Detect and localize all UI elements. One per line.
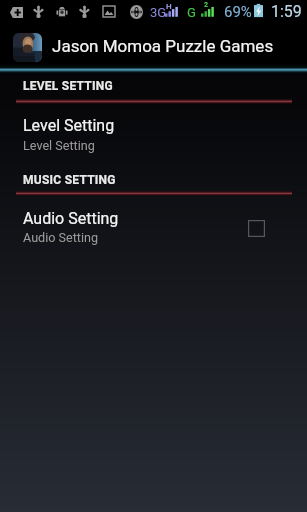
staticText: Jason Momoa Puzzle Games [52, 36, 274, 56]
staticText: MUSIC SETTING [23, 173, 116, 187]
staticText: Audio Setting [23, 209, 119, 228]
staticText: 2 [204, 1, 209, 9]
button[interactable] [0, 110, 307, 156]
staticText: Level Setting [23, 138, 95, 153]
staticText: LEVEL SETTING [23, 79, 113, 93]
staticText: Audio Setting [23, 230, 99, 245]
staticText: Level Setting [23, 116, 115, 135]
button[interactable] [0, 203, 307, 249]
button[interactable] [0, 0, 307, 68]
staticText: 1:59 [271, 2, 302, 21]
staticText: H [166, 2, 172, 11]
staticText: G [187, 5, 196, 20]
button[interactable]: Audio Setting checkbox [239, 211, 273, 245]
staticText: 3G [150, 5, 167, 20]
staticText: 69% [224, 3, 252, 21]
